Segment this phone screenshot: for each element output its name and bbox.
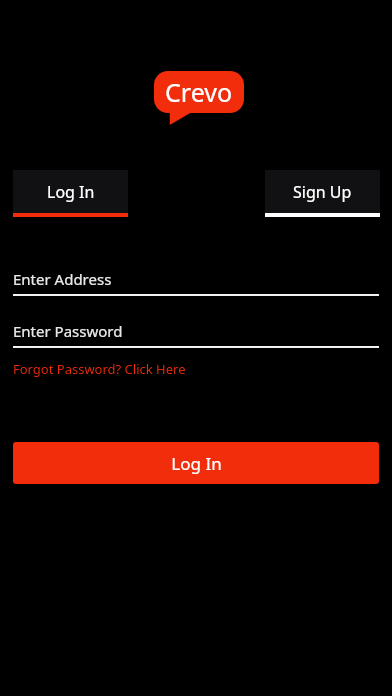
staticText: Forgot Password? Click Here: [13, 360, 186, 378]
staticText: Log In: [47, 181, 95, 203]
staticText: Sign Up: [293, 181, 352, 203]
staticText: Log In: [171, 452, 222, 475]
button[interactable]: Log In: [13, 442, 379, 484]
staticText: Enter Password: [13, 321, 123, 341]
button[interactable]: Forgot Password? Click Here: [13, 360, 186, 378]
button[interactable]: Enter Password: [13, 318, 379, 348]
button[interactable]: Log In: [13, 170, 128, 217]
button[interactable]: Sign Up: [265, 170, 380, 217]
staticText: Enter Address: [13, 269, 112, 289]
staticText: Crevo: [165, 75, 233, 109]
button[interactable]: Enter Address: [13, 266, 379, 296]
